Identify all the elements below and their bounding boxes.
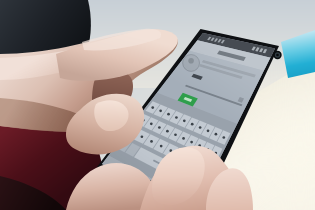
button[interactable]: Hands typing a message on a smartphone xyxy=(0,0,315,210)
